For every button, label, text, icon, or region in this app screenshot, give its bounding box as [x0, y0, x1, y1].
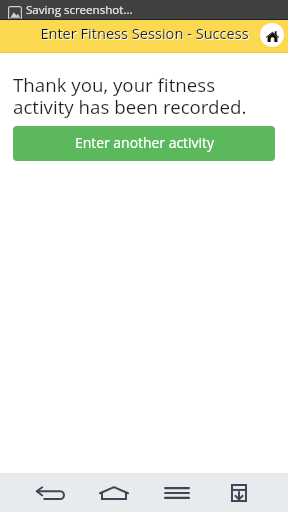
button[interactable]: Back [19, 473, 82, 512]
staticText: Thank you, your fitness activity has bee… [13, 72, 247, 120]
button[interactable]: Enter another activity [13, 126, 275, 161]
button[interactable]: Save [208, 473, 269, 512]
staticText: Saving screenshot… [26, 2, 133, 18]
button[interactable]: Home [260, 23, 284, 47]
staticText: Enter Fitness Session - Success [40, 23, 249, 43]
staticText: Enter another activity [75, 133, 214, 152]
button[interactable]: Home [82, 473, 145, 512]
button[interactable]: Recent apps [145, 473, 208, 512]
